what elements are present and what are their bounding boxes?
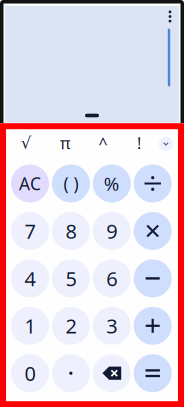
button[interactable]: 3 (93, 307, 131, 345)
button[interactable]: 5 (52, 259, 90, 297)
button[interactable]: Minus (134, 259, 172, 297)
button[interactable]: Collapse (159, 137, 173, 151)
staticText: ! (137, 132, 141, 154)
staticText: 5 (65, 265, 76, 292)
staticText: 9 (106, 218, 117, 244)
button[interactable]: π (50, 131, 80, 155)
button[interactable]: 2 (52, 307, 90, 345)
button[interactable]: AC (11, 164, 49, 202)
button[interactable]: More options (161, 6, 179, 26)
staticText: 8 (65, 218, 76, 244)
button[interactable]: Decimal point (52, 354, 90, 392)
button[interactable]: Divide (134, 164, 172, 202)
staticText: π (60, 132, 70, 154)
staticText: 4 (24, 265, 35, 292)
staticText: 6 (106, 265, 117, 292)
button[interactable]: 0 (11, 354, 49, 392)
button[interactable]: Plus (134, 307, 172, 345)
button[interactable]: 8 (52, 212, 90, 250)
staticText: ( ) (63, 172, 78, 195)
staticText: 7 (24, 218, 35, 244)
button[interactable]: ! (124, 131, 154, 155)
staticText: 0 (24, 360, 35, 386)
button[interactable]: 9 (93, 212, 131, 250)
button[interactable]: √ (11, 131, 41, 155)
staticText: 2 (65, 312, 76, 339)
button[interactable]: 1 (11, 307, 49, 345)
button[interactable]: Equals (134, 354, 172, 392)
staticText: % (104, 171, 120, 196)
button[interactable]: Multiply (134, 212, 172, 250)
staticText: 3 (106, 312, 117, 339)
button[interactable]: 4 (11, 259, 49, 297)
staticText: ^ (98, 132, 107, 154)
button[interactable]: Backspace (93, 354, 131, 392)
button[interactable]: 7 (11, 212, 49, 250)
button[interactable]: % (93, 164, 131, 202)
button[interactable]: ^ (88, 131, 118, 155)
staticText: √ (21, 134, 31, 152)
button[interactable]: 6 (93, 259, 131, 297)
staticText: AC (19, 172, 41, 195)
button[interactable]: ( ) (52, 164, 90, 202)
staticText: 1 (24, 312, 35, 339)
